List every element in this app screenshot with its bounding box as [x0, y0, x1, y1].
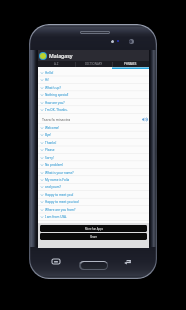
button[interactable]: My name is Folia — [38, 176, 149, 183]
staticText: Happy to meet you too! — [45, 200, 80, 204]
button[interactable]: Where are you from? — [38, 206, 149, 213]
button[interactable]: Welcome! — [38, 124, 149, 131]
other: Play pronunciation — [142, 117, 147, 122]
staticText: My name is Folia — [45, 178, 70, 182]
staticText: How are you? — [45, 101, 65, 105]
button[interactable]: PHRASES — [112, 61, 149, 67]
button[interactable]: Tsara fa misaotra — [38, 114, 149, 124]
staticText: Hi! — [45, 78, 49, 82]
staticText: Share — [90, 235, 97, 239]
button[interactable]: Hi! — [38, 76, 149, 83]
button[interactable]: Nothing special! — [38, 91, 149, 98]
staticText: I'm OK. Thanks. — [45, 108, 68, 112]
button[interactable]: Please — [38, 146, 149, 153]
button[interactable]: Bye! — [38, 131, 149, 138]
staticText: What's up? — [45, 86, 61, 90]
button[interactable]: I am from USA. — [38, 213, 149, 220]
staticText: Nothing special! — [45, 93, 69, 97]
staticText: What is your name? — [45, 171, 74, 175]
button[interactable]: Happy to meet you too! — [38, 198, 149, 205]
button[interactable]: Menu — [52, 259, 60, 264]
button[interactable]: DICTIONARY — [75, 61, 112, 67]
button[interactable]: How are you? — [38, 99, 149, 106]
staticText: PHRASES — [124, 62, 137, 66]
staticText: Welcome! — [45, 126, 60, 130]
button[interactable]: and yours? — [38, 183, 149, 190]
staticText: Thanks! — [45, 141, 57, 145]
button[interactable]: Share — [40, 233, 147, 240]
button[interactable]: Happy to meet you! — [38, 191, 149, 198]
button[interactable]: A-Z — [38, 61, 75, 67]
staticText: Please — [45, 148, 55, 152]
button[interactable]: What's up? — [38, 84, 149, 91]
staticText: A-Z — [54, 62, 59, 66]
button[interactable]: Thanks! — [38, 139, 149, 146]
staticText: and yours? — [45, 185, 61, 189]
button[interactable]: No problem! — [38, 161, 149, 168]
staticText: More fun Apps — [85, 227, 103, 231]
staticText: Tsara fa misaotra — [42, 117, 71, 122]
button[interactable]: Back — [124, 260, 132, 265]
button[interactable]: Hello! — [38, 69, 149, 76]
staticText: I am from USA. — [45, 215, 67, 219]
button[interactable]: More fun Apps — [40, 225, 147, 232]
button[interactable]: I'm OK. Thanks. — [38, 106, 149, 113]
button[interactable]: Malagasy — [38, 50, 149, 61]
staticText: Malagasy — [49, 52, 73, 59]
staticText: Sorry! — [45, 156, 54, 160]
staticText: DICTIONARY — [85, 62, 103, 66]
staticText: Happy to meet you! — [45, 193, 74, 197]
button[interactable]: Home — [79, 261, 108, 270]
button[interactable]: Sorry! — [38, 154, 149, 161]
staticText: Bye! — [45, 133, 52, 137]
staticText: Where are you from? — [45, 208, 76, 212]
staticText: No problem! — [45, 163, 64, 167]
button[interactable]: What is your name? — [38, 169, 149, 176]
staticText: Hello! — [45, 71, 54, 75]
